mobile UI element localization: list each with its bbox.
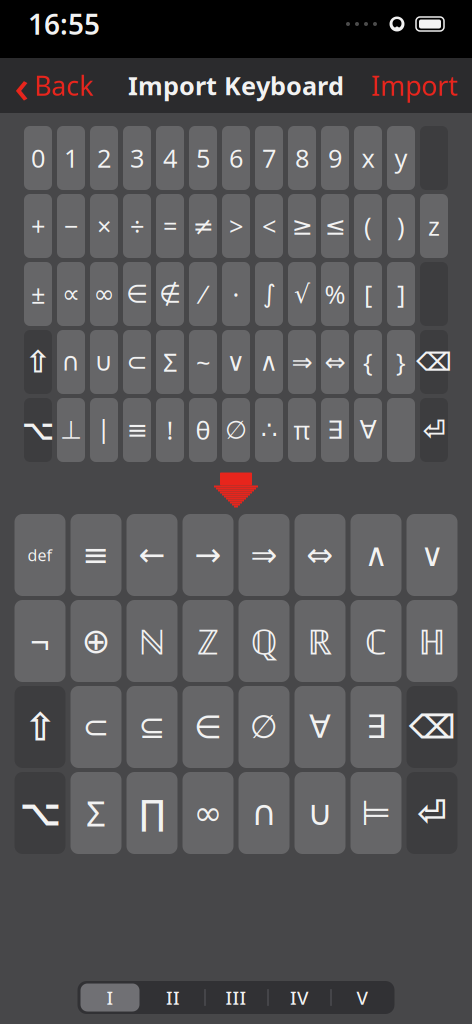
button[interactable]: ∧ (255, 330, 283, 394)
button[interactable]: x (354, 126, 382, 190)
button[interactable]: ¬ (14, 600, 65, 682)
button[interactable]: ℂ (350, 600, 401, 682)
button[interactable]: II (141, 981, 204, 1014)
button[interactable]: ∧ (350, 514, 401, 596)
button[interactable]: ⇧ (14, 686, 65, 768)
button[interactable]: ‹ (0, 49, 93, 122)
button[interactable]: ≠ (189, 194, 217, 258)
button[interactable]: ~ (189, 330, 217, 394)
button[interactable]: def (14, 514, 65, 596)
button[interactable]: ⊕ (70, 600, 121, 682)
button[interactable]: · (222, 262, 250, 326)
button[interactable]: ⇧ (24, 330, 52, 394)
button[interactable]: ℤ (182, 600, 233, 682)
button[interactable]: π (288, 398, 316, 462)
button[interactable]: ⌥ (14, 772, 65, 854)
button[interactable]: ⊥ (57, 398, 85, 462)
button[interactable]: = (156, 194, 184, 258)
button[interactable]: ÷ (123, 194, 151, 258)
button[interactable]: I (78, 981, 141, 1014)
button[interactable]: √ (288, 262, 316, 326)
button[interactable]: ∞ (90, 262, 118, 326)
button[interactable]: ) (387, 194, 415, 258)
button[interactable]: y (387, 126, 415, 190)
button[interactable]: ∣ (90, 398, 118, 462)
button[interactable]: ℕ (126, 600, 177, 682)
button[interactable]: 1 (57, 126, 85, 190)
button[interactable]: ∃ (350, 686, 401, 768)
button[interactable]: ∈ (182, 686, 233, 768)
button[interactable]: ⏎ (420, 398, 448, 462)
button[interactable]: + (24, 194, 52, 258)
button[interactable]: ⏎ (406, 772, 457, 854)
button[interactable]: Σ (70, 772, 121, 854)
button[interactable]: 0 (24, 126, 52, 190)
button[interactable]: ∀ (294, 686, 345, 768)
button[interactable]: ← (126, 514, 177, 596)
button[interactable]: ∪ (294, 772, 345, 854)
button[interactable]: ≡ (123, 398, 151, 462)
button[interactable]: ∀ (354, 398, 382, 462)
button[interactable]: ⇔ (321, 330, 349, 394)
button[interactable]: ⊂ (123, 330, 151, 394)
button[interactable]: ⇒ (238, 514, 289, 596)
button[interactable]: % (321, 262, 349, 326)
button[interactable]: ∨ (406, 514, 457, 596)
button[interactable]: ℚ (238, 600, 289, 682)
button[interactable]: 5 (189, 126, 217, 190)
button[interactable]: ≡ (70, 514, 121, 596)
button[interactable]: [ (354, 262, 382, 326)
button[interactable]: − (57, 194, 85, 258)
button[interactable]: ⊆ (126, 686, 177, 768)
button[interactable]: Import (371, 62, 472, 109)
button[interactable]: ∩ (57, 330, 85, 394)
button[interactable]: V (330, 981, 393, 1014)
button[interactable]: 8 (288, 126, 316, 190)
button[interactable]: ∩ (238, 772, 289, 854)
button[interactable]: ! (156, 398, 184, 462)
button[interactable]: ∈ (123, 262, 151, 326)
button[interactable]: ℍ (406, 600, 457, 682)
button[interactable]: ≥ (288, 194, 316, 258)
button[interactable]: ∅ (222, 398, 250, 462)
button[interactable]: z (420, 194, 448, 258)
button[interactable]: Blank key (387, 398, 415, 462)
button[interactable]: < (255, 194, 283, 258)
button[interactable]: ∏ (126, 772, 177, 854)
button[interactable]: 7 (255, 126, 283, 190)
button[interactable]: ∴ (255, 398, 283, 462)
button[interactable]: IV (267, 981, 330, 1014)
button[interactable]: × (90, 194, 118, 258)
button[interactable]: ∉ (156, 262, 184, 326)
button[interactable]: 2 (90, 126, 118, 190)
button[interactable]: ⊨ (350, 772, 401, 854)
button[interactable]: ⁄ (189, 262, 217, 326)
button[interactable]: Σ (156, 330, 184, 394)
button[interactable]: 3 (123, 126, 151, 190)
button[interactable]: ⌫ (420, 330, 448, 394)
button[interactable]: θ (189, 398, 217, 462)
button[interactable]: III (204, 981, 267, 1014)
button[interactable]: { (354, 330, 382, 394)
button[interactable]: ( (354, 194, 382, 258)
button[interactable]: ∝ (57, 262, 85, 326)
button[interactable]: → (182, 514, 233, 596)
button[interactable]: ⊂ (70, 686, 121, 768)
button[interactable]: ∞ (182, 772, 233, 854)
button[interactable]: ⌥ (24, 398, 52, 462)
button[interactable]: } (387, 330, 415, 394)
button[interactable]: ∪ (90, 330, 118, 394)
button[interactable]: ∅ (238, 686, 289, 768)
button[interactable]: ≤ (321, 194, 349, 258)
button[interactable]: ∃ (321, 398, 349, 462)
button[interactable]: 6 (222, 126, 250, 190)
button[interactable]: ] (387, 262, 415, 326)
button[interactable]: ⇔ (294, 514, 345, 596)
button[interactable]: ⌫ (406, 686, 457, 768)
button[interactable]: 4 (156, 126, 184, 190)
button[interactable]: ⇒ (288, 330, 316, 394)
button[interactable]: ± (24, 262, 52, 326)
button[interactable]: ∫ (255, 262, 283, 326)
